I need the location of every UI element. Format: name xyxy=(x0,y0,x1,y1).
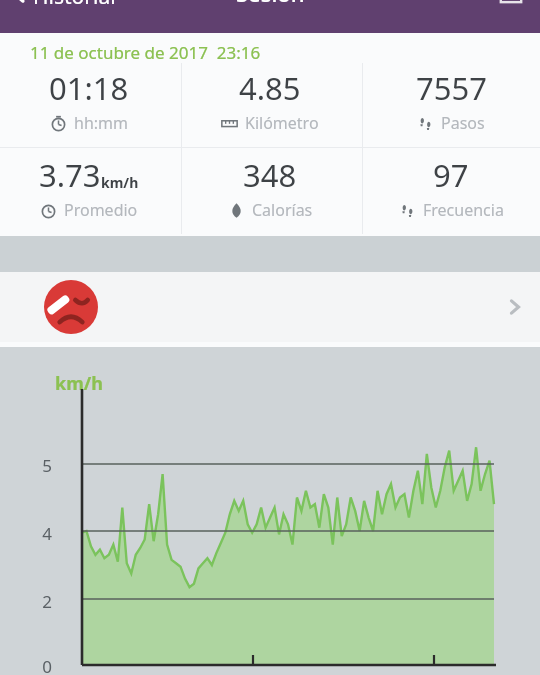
staticText: km/h xyxy=(101,173,139,192)
staticText: Frecuencia xyxy=(423,199,504,221)
staticText: Kilómetro xyxy=(245,112,319,134)
button[interactable]: Historial xyxy=(0,0,126,11)
staticText: Promedio xyxy=(64,199,138,221)
button[interactable]: 97 xyxy=(362,148,540,234)
staticText: 4 xyxy=(42,522,52,545)
button[interactable]: 3.73 xyxy=(0,148,178,234)
staticText: Pasos xyxy=(441,112,485,134)
staticText: 5 xyxy=(42,454,52,477)
staticText: 0 xyxy=(42,655,52,675)
button[interactable]: 4.85 xyxy=(181,61,359,147)
staticText: 01:18 xyxy=(49,67,129,109)
staticText: Historial xyxy=(33,0,116,7)
staticText: 97 xyxy=(433,154,469,196)
staticText: km/h xyxy=(55,371,103,396)
staticText: Sesión xyxy=(236,0,305,8)
staticText: hh:mm xyxy=(74,112,128,134)
staticText: 3.73 xyxy=(39,154,101,196)
button[interactable]: Compartir xyxy=(482,0,540,9)
staticText: 4.85 xyxy=(239,67,301,109)
button[interactable]: 7557 xyxy=(362,61,540,147)
button[interactable]: 348 xyxy=(181,148,359,234)
staticText: 7557 xyxy=(416,67,487,109)
button[interactable] xyxy=(0,272,540,342)
staticText: 2 xyxy=(42,590,52,613)
staticText: Calorías xyxy=(252,199,313,221)
staticText: 348 xyxy=(243,154,297,196)
staticText: 11 de octubre de 2017 23:16 xyxy=(30,41,261,64)
button[interactable]: 01:18 xyxy=(0,61,178,147)
